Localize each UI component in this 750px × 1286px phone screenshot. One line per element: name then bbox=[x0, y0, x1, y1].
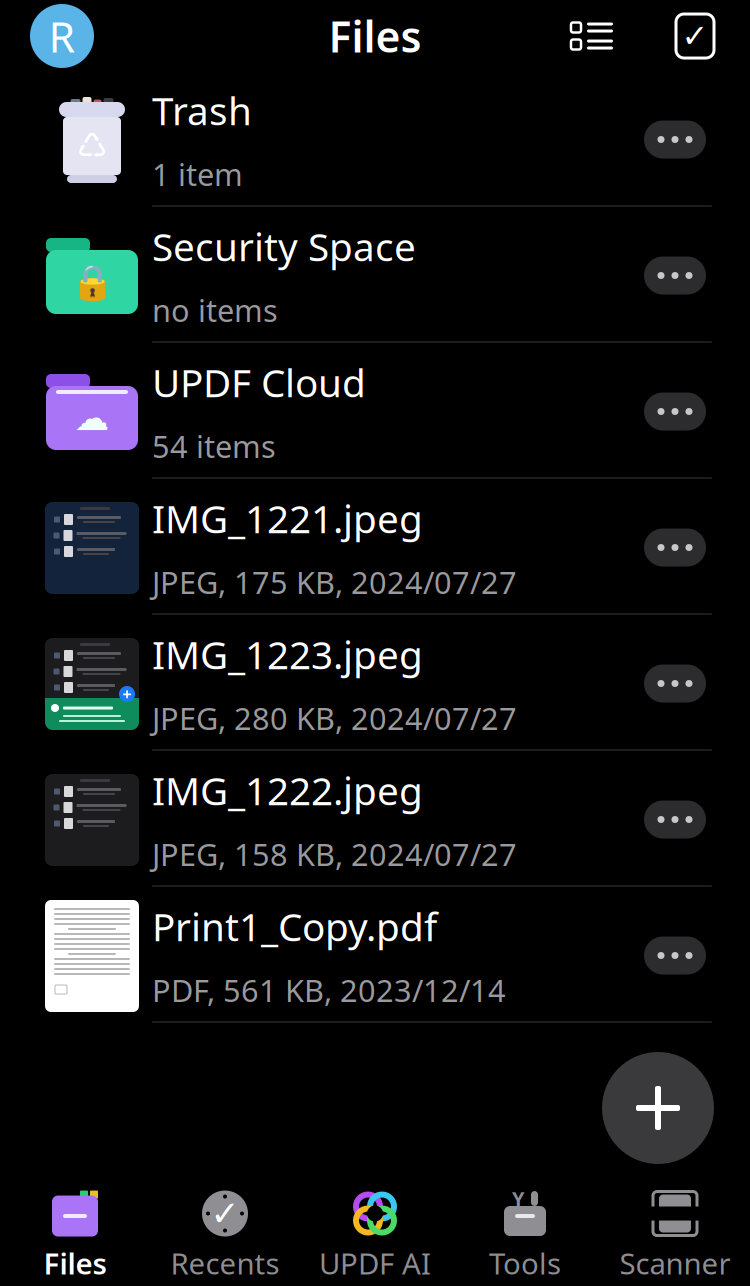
staticText: IMG_1222.jpeg bbox=[152, 764, 423, 816]
button[interactable]: + bbox=[32, 616, 712, 752]
staticText: 🔒 bbox=[70, 262, 113, 302]
button[interactable]: Account bbox=[30, 4, 94, 68]
staticText: Security Space bbox=[152, 220, 416, 272]
staticText: R bbox=[48, 8, 75, 64]
staticText: 54 items bbox=[152, 426, 276, 466]
staticText: Print1_Copy.pdf bbox=[152, 900, 437, 952]
button[interactable]: Y bbox=[450, 1190, 600, 1282]
button[interactable]: ♺ bbox=[32, 72, 712, 208]
staticText: JPEG, 175 KB, 2024/07/27 bbox=[152, 562, 517, 602]
button[interactable]: More options bbox=[644, 936, 706, 974]
staticText: ✓ bbox=[681, 18, 708, 54]
button[interactable]: More options bbox=[644, 392, 706, 430]
button[interactable]: Add bbox=[602, 1052, 714, 1164]
button[interactable]: Change view bbox=[570, 14, 614, 58]
staticText: Scanner bbox=[619, 1243, 730, 1282]
button[interactable]: Select bbox=[676, 14, 714, 58]
staticText: UPDF Cloud bbox=[152, 356, 366, 408]
staticText: + bbox=[122, 683, 131, 705]
staticText: IMG_1223.jpeg bbox=[152, 628, 423, 680]
staticText: Files bbox=[43, 1243, 106, 1282]
staticText: Trash bbox=[152, 84, 252, 136]
staticText: JPEG, 158 KB, 2024/07/27 bbox=[152, 834, 517, 874]
staticText: Tools bbox=[489, 1243, 561, 1282]
staticText: 1 item bbox=[152, 154, 243, 194]
staticText: UPDF AI bbox=[319, 1243, 431, 1282]
staticText: Files bbox=[328, 8, 421, 64]
button[interactable]: More options bbox=[644, 120, 706, 158]
button[interactable]: Print1_Copy.pdf bbox=[32, 888, 712, 1024]
staticText: Y bbox=[512, 1185, 525, 1212]
button[interactable]: ☁ bbox=[32, 344, 712, 480]
button[interactable]: 🔒 bbox=[32, 208, 712, 344]
button[interactable]: IMG_1221.jpeg bbox=[32, 480, 712, 616]
staticText: ☁ bbox=[74, 398, 109, 438]
button[interactable]: Scanner bbox=[600, 1190, 750, 1282]
button[interactable]: More options bbox=[644, 664, 706, 702]
button[interactable]: ✓ bbox=[150, 1190, 300, 1282]
button[interactable]: Files bbox=[0, 1190, 150, 1282]
staticText: ♺ bbox=[76, 126, 107, 166]
staticText: PDF, 561 KB, 2023/12/14 bbox=[152, 970, 506, 1010]
button[interactable]: More options bbox=[644, 800, 706, 838]
staticText: no items bbox=[152, 290, 278, 330]
staticText: JPEG, 280 KB, 2024/07/27 bbox=[152, 698, 517, 738]
staticText: Recents bbox=[170, 1243, 279, 1282]
button[interactable]: IMG_1222.jpeg bbox=[32, 752, 712, 888]
button[interactable]: UPDF AI bbox=[300, 1190, 450, 1282]
button[interactable]: More options bbox=[644, 256, 706, 294]
button[interactable]: More options bbox=[644, 528, 706, 566]
staticText: IMG_1221.jpeg bbox=[152, 492, 423, 544]
staticText: ✓ bbox=[210, 1194, 239, 1233]
